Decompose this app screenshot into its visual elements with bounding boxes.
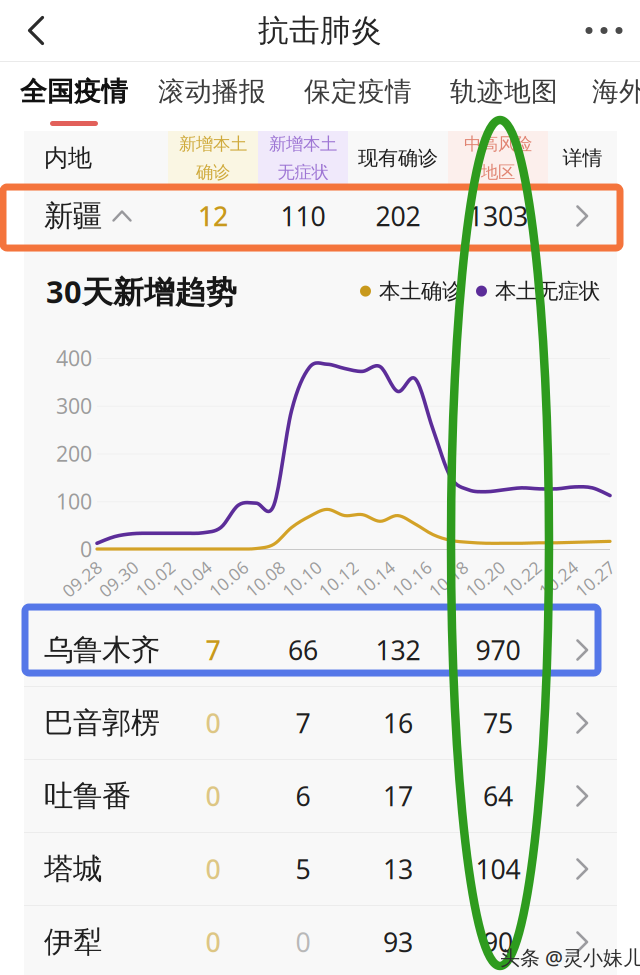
staticText: 0 <box>80 535 92 563</box>
staticText: 详情 <box>562 146 602 170</box>
staticText: 93 <box>383 924 413 960</box>
staticText: 全国疫情 <box>20 75 128 108</box>
staticText: 100 <box>56 487 92 515</box>
staticText: 66 <box>288 632 318 668</box>
staticText: 内地 <box>44 143 92 173</box>
staticText: 无症状 <box>277 161 328 183</box>
staticText: 5 <box>295 851 310 887</box>
staticText: 90 <box>483 924 513 960</box>
staticText: 新增本土 <box>179 133 247 154</box>
staticText: 头条 @灵小妹儿 <box>500 944 640 971</box>
staticText: 0 <box>205 924 220 960</box>
staticText: 10.08 <box>243 567 288 590</box>
staticText: 09.28 <box>59 567 104 590</box>
staticText: 09.30 <box>96 567 141 590</box>
staticText: 现有确诊 <box>358 146 438 170</box>
staticText: 16 <box>383 705 413 741</box>
staticText: 滚动播报 <box>158 75 266 108</box>
staticText: 新增本土 <box>269 133 337 154</box>
staticText: 10.14 <box>353 567 398 590</box>
staticText: 7 <box>205 632 220 668</box>
staticText: 10.06 <box>206 567 251 590</box>
staticText: 10.24 <box>536 567 581 590</box>
staticText: 970 <box>475 632 520 668</box>
button[interactable]: 滚动播报 <box>158 62 266 132</box>
button[interactable]: Back <box>0 0 72 61</box>
staticText: 202 <box>375 198 420 234</box>
staticText: 17 <box>383 778 413 814</box>
staticText: 75 <box>483 705 513 741</box>
staticText: 吐鲁番 <box>44 778 131 814</box>
staticText: 10.04 <box>169 567 214 590</box>
staticText: 400 <box>56 344 92 372</box>
staticText: 7 <box>295 705 310 741</box>
staticText: 轨迹地图 <box>450 75 558 108</box>
staticText: 0 <box>295 924 310 960</box>
staticText: 保定疫情 <box>304 75 412 108</box>
staticText: 1303 <box>468 198 528 234</box>
staticText: 10.02 <box>133 567 178 590</box>
button[interactable]: 巴音郭楞 <box>24 687 617 759</box>
button[interactable]: 吐鲁番 <box>24 760 617 832</box>
staticText: 110 <box>280 198 325 234</box>
staticText: 10.18 <box>426 567 471 590</box>
staticText: 巴音郭楞 <box>44 705 160 741</box>
button[interactable]: 全国疫情 <box>20 62 128 132</box>
staticText: 中高风险 <box>464 133 532 154</box>
staticText: 132 <box>375 632 420 668</box>
staticText: 10.10 <box>279 567 324 590</box>
staticText: 塔城 <box>44 851 102 887</box>
staticText: 0 <box>205 851 220 887</box>
button[interactable]: 塔城 <box>24 833 617 905</box>
staticText: 乌鲁木齐 <box>44 632 160 668</box>
staticText: 本土无症状 <box>495 278 600 304</box>
button[interactable]: 保定疫情 <box>304 62 412 132</box>
button[interactable]: 乌鲁木齐 <box>24 614 617 686</box>
staticText: 200 <box>56 439 92 468</box>
staticText: 伊犁 <box>44 924 102 960</box>
staticText: 6 <box>295 778 310 814</box>
staticText: 本土确诊 <box>379 278 463 304</box>
staticText: 10.27 <box>572 567 617 590</box>
button[interactable]: 轨迹地图 <box>450 62 558 132</box>
staticText: 10.20 <box>463 567 508 590</box>
staticText: 0 <box>205 778 220 814</box>
button[interactable]: 新疆 <box>24 185 617 247</box>
staticText: 12 <box>198 198 228 234</box>
staticText: 地区 <box>481 161 515 183</box>
staticText: 300 <box>56 392 92 420</box>
staticText: 10.12 <box>316 567 361 590</box>
button[interactable]: 海外疫情 <box>592 62 640 132</box>
staticText: 抗击肺炎 <box>258 12 382 49</box>
staticText: 30天新增趋势 <box>46 271 237 312</box>
staticText: 0 <box>205 705 220 741</box>
staticText: 10.22 <box>499 567 544 590</box>
staticText: 新疆 <box>44 198 102 234</box>
staticText: 确诊 <box>196 161 230 183</box>
staticText: 104 <box>475 851 520 887</box>
staticText: 10.16 <box>389 567 434 590</box>
staticText: 海外疫情 <box>592 75 640 108</box>
button[interactable]: 伊犁 <box>24 906 617 975</box>
button[interactable]: More <box>568 0 640 61</box>
staticText: 64 <box>483 778 513 814</box>
staticText: 13 <box>383 851 413 887</box>
